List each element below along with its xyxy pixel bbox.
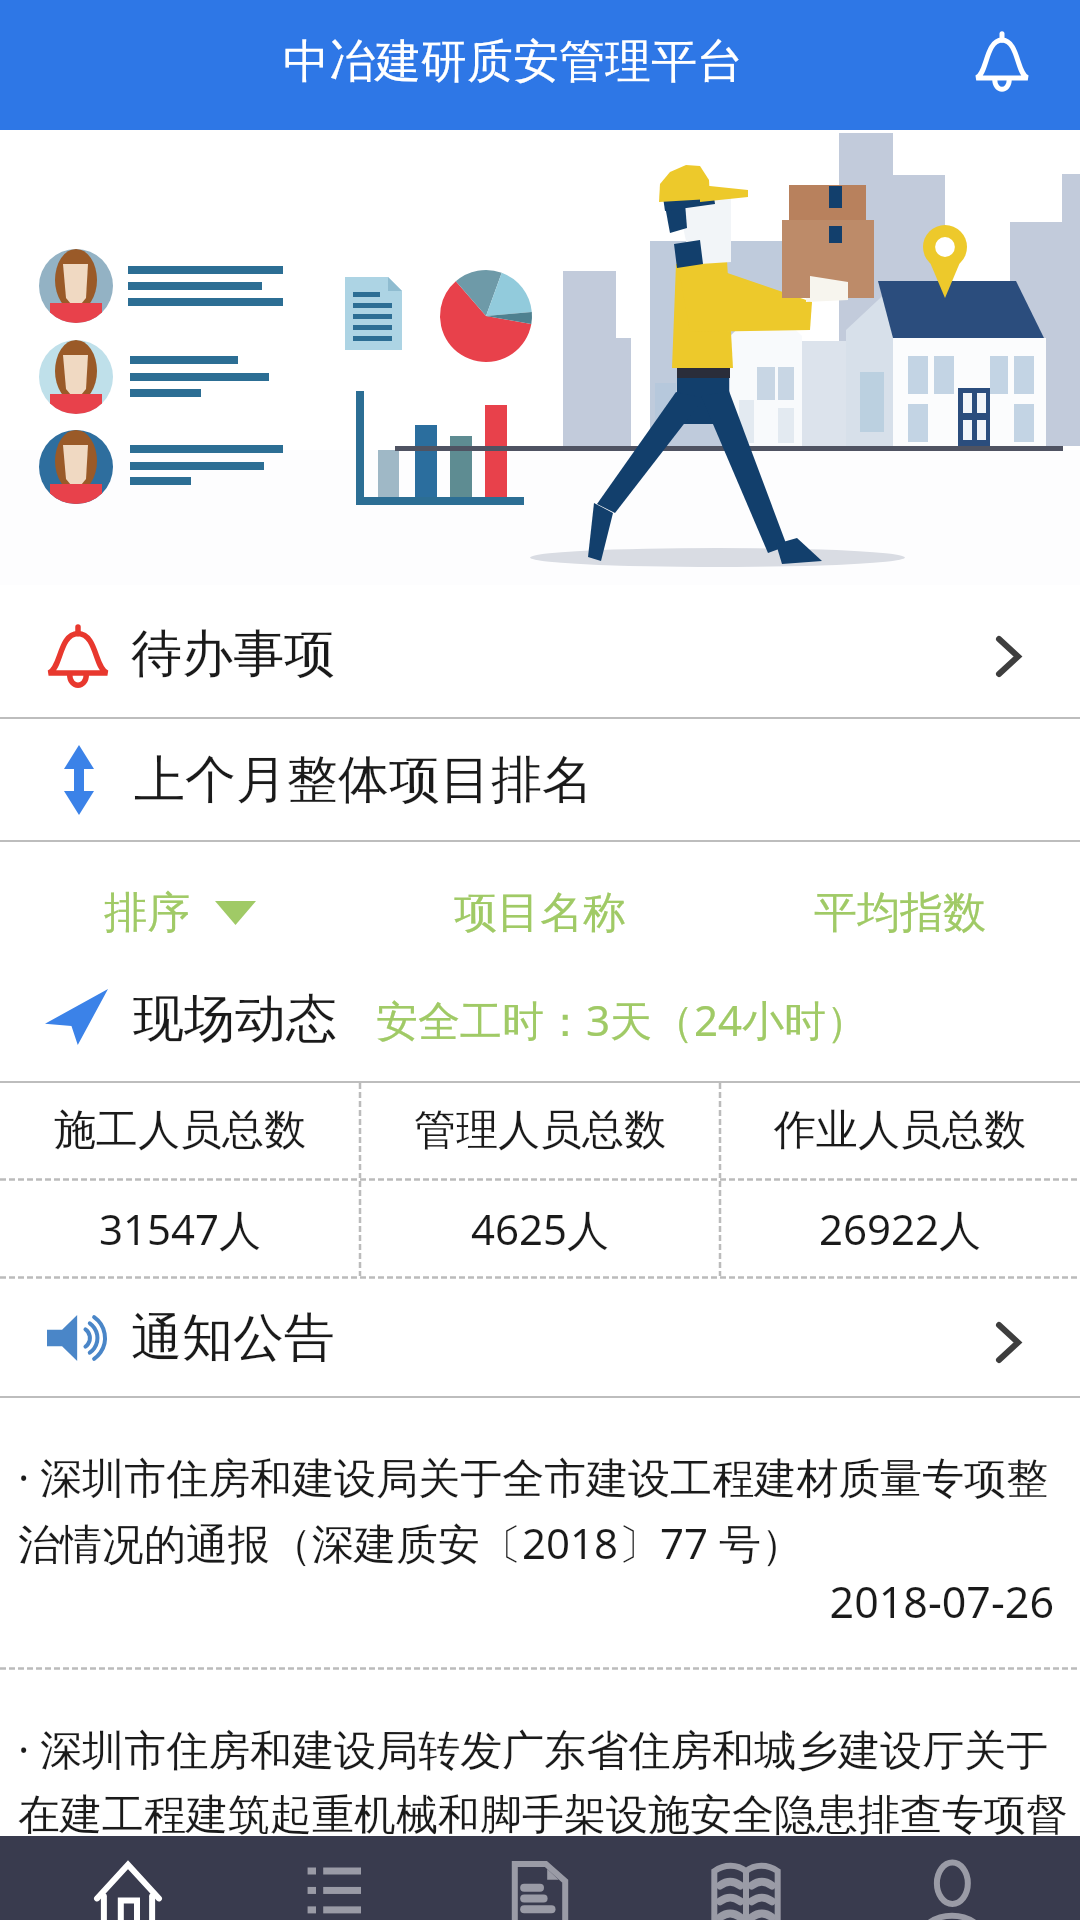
button[interactable]: Documents [437,1836,643,1920]
button[interactable]: 上个月整体项目排名 [0,719,1080,840]
button[interactable]: Notifications [974,32,1030,94]
staticText: 31547人 [0,1200,360,1257]
button[interactable]: 通知公告 [0,1279,1080,1396]
staticText: 安全工时：3天（24小时） [376,991,869,1048]
staticText: 施工人员总数 [0,1104,360,1157]
staticText: 作业人员总数 [720,1104,1080,1157]
staticText: 现场动态 [133,987,337,1051]
button[interactable]: 排序 [0,886,360,940]
staticText: 4625人 [360,1200,720,1257]
button[interactable]: Home [25,1836,231,1920]
button[interactable]: Profile [849,1836,1055,1920]
staticText: · 深圳市住房和建设局转发广东省住房和城乡建设厅关于 在建工程建筑起重机械和脚手… [18,1720,1068,1841]
button[interactable]: 平均指数 [720,886,1080,940]
button[interactable]: Library [643,1836,849,1920]
staticText: 2018-07-26 [18,1572,1054,1631]
button[interactable]: · 深圳市住房和建设局转发广东省住房和城乡建设厅关于 在建工程建筑起重机械和脚手… [0,1670,1080,1877]
staticText: 通知公告 [131,1306,335,1370]
button[interactable]: List [231,1836,437,1920]
staticText: 中冶建研质安管理平台 [283,33,743,91]
staticText: 待办事项 [131,622,335,686]
staticText: 26922人 [720,1200,1080,1257]
button[interactable]: · 深圳市住房和建设局关于全市建设工程建材质量专项整 治情况的通报（深建质安〔2… [0,1398,1080,1667]
staticText: 管理人员总数 [360,1104,720,1157]
staticText: 排序 [104,886,190,940]
staticText: 上个月整体项目排名 [134,748,593,812]
button[interactable]: 项目名称 [360,886,720,940]
button[interactable]: 待办事项 [0,585,1080,717]
staticText: · 深圳市住房和建设局关于全市建设工程建材质量专项整 治情况的通报（深建质安〔2… [18,1448,1049,1572]
